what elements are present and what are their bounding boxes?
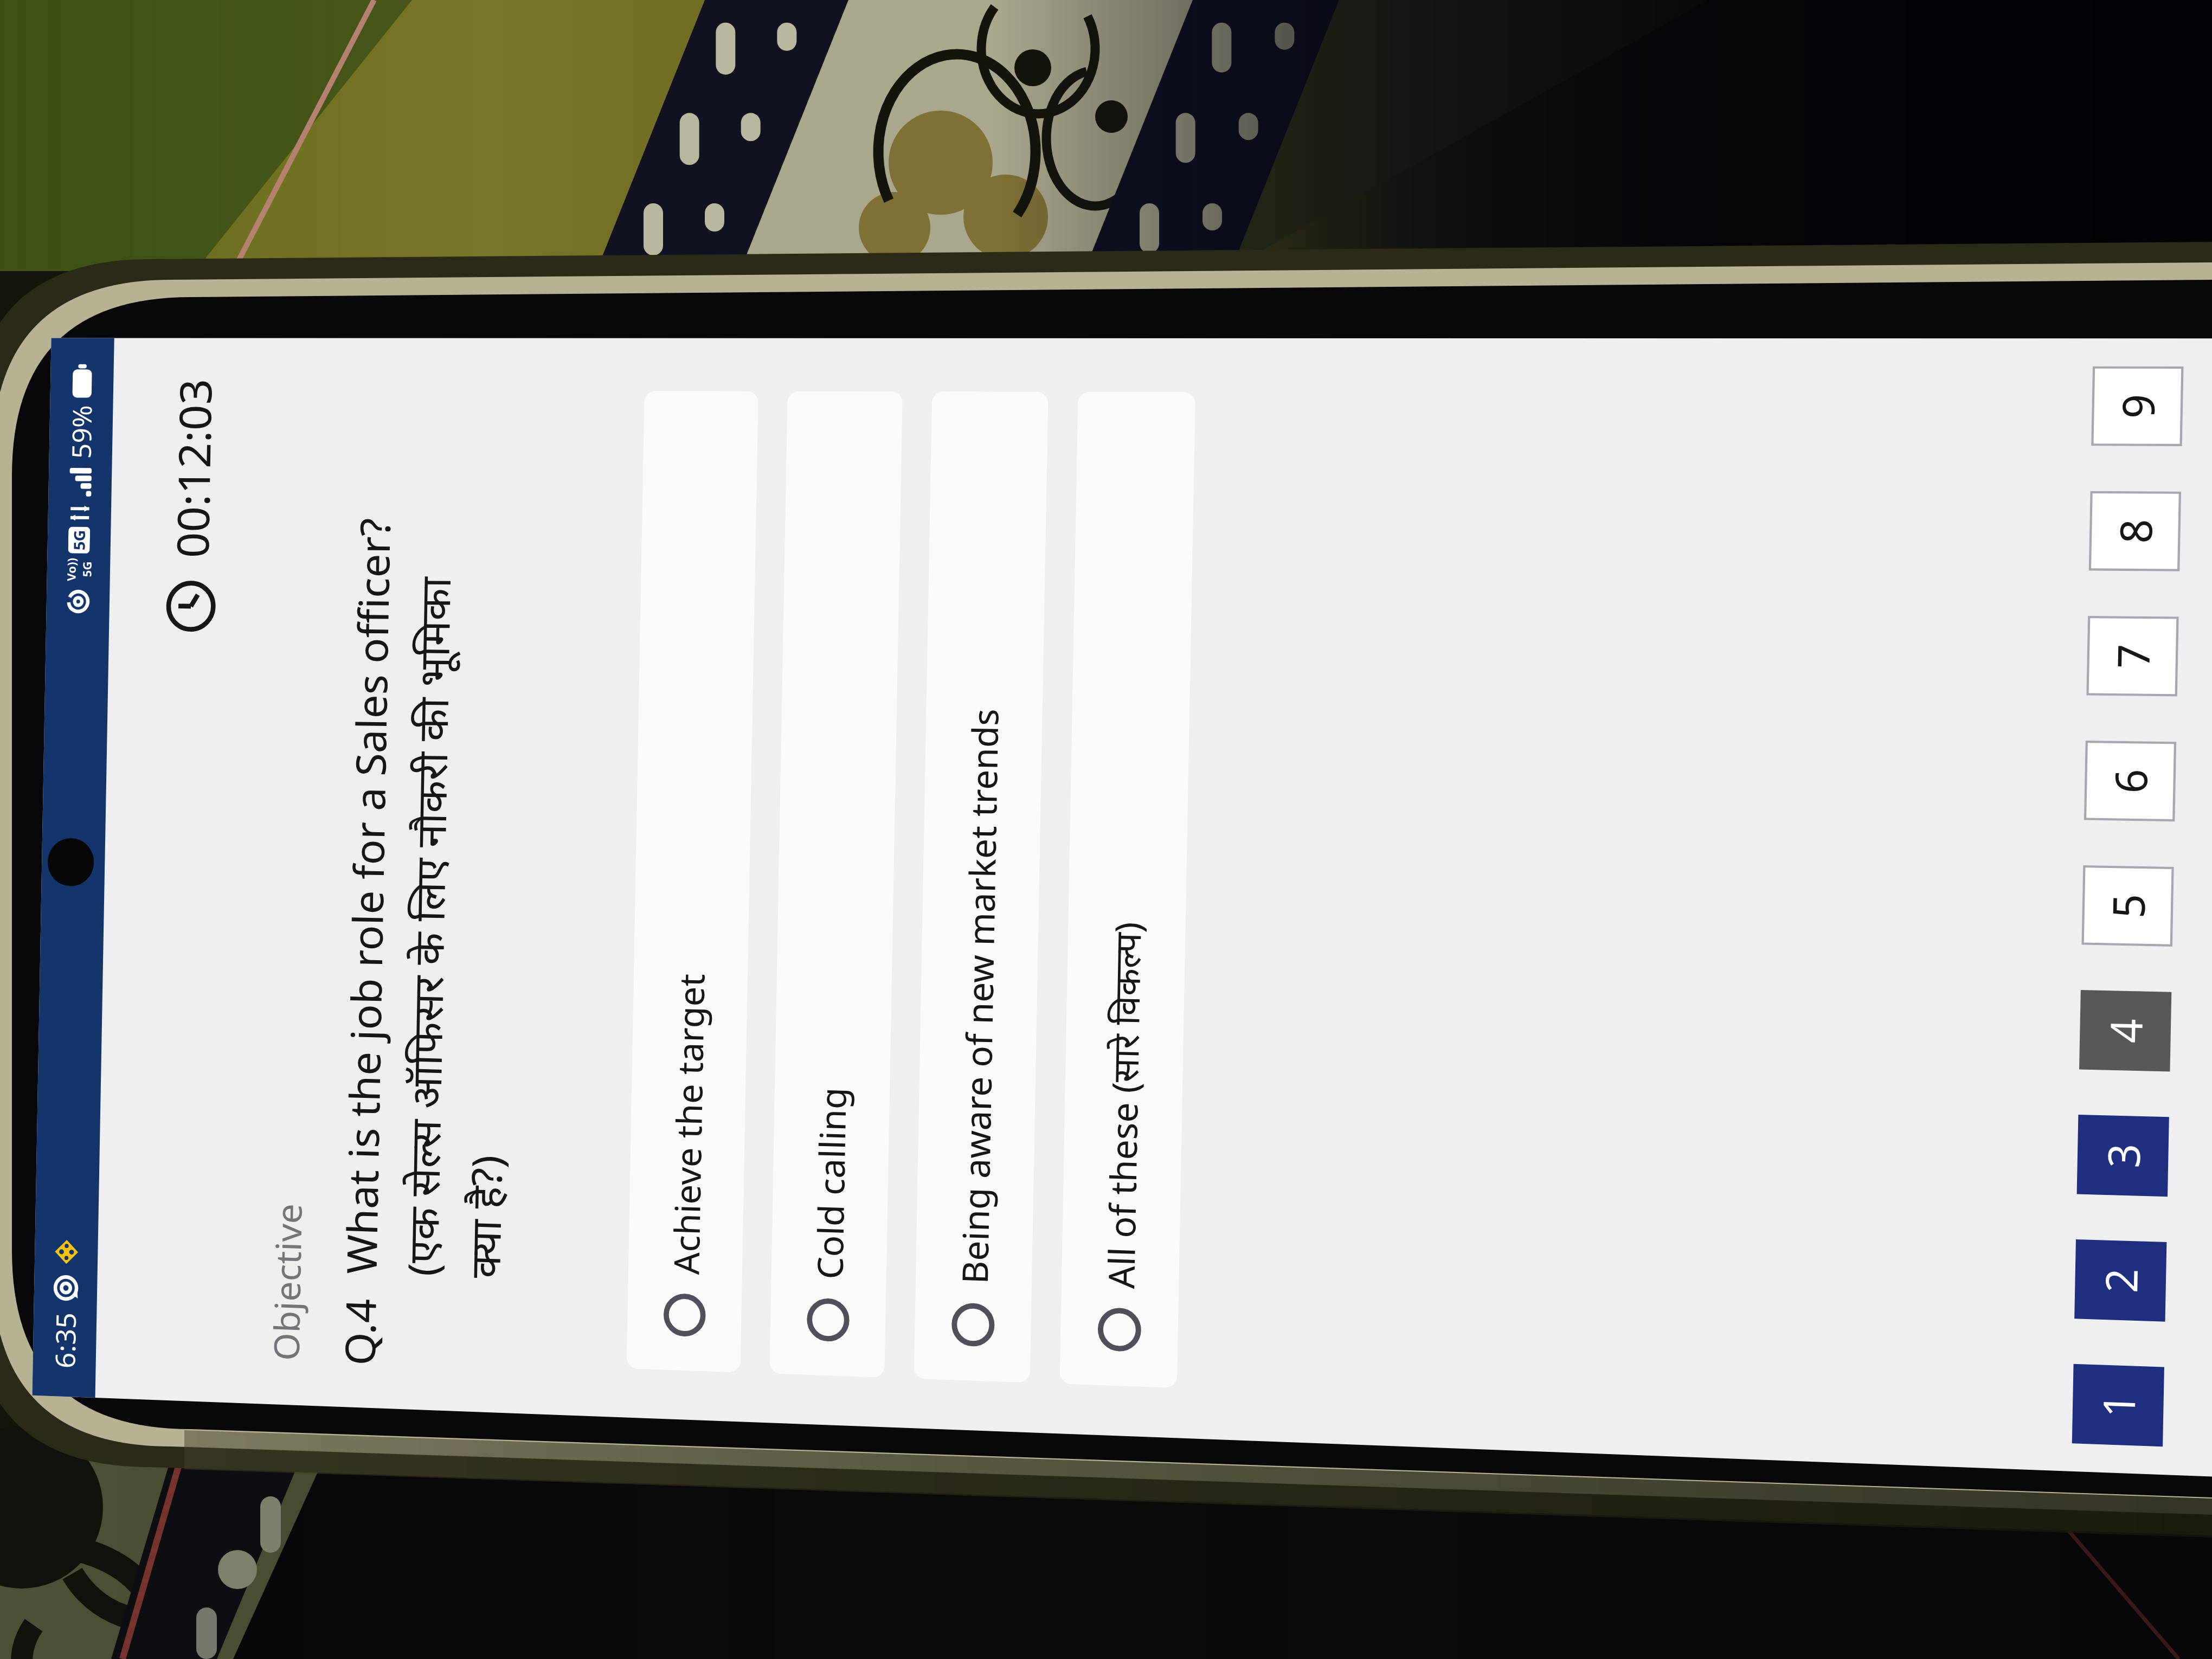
button[interactable]: 8 (2089, 491, 2181, 571)
button[interactable]: 5 (2082, 865, 2174, 947)
button[interactable]: 4 (2079, 990, 2172, 1072)
staticText: Q.4 (331, 1297, 388, 1366)
staticText: 8 (2105, 519, 2166, 544)
button[interactable]: 6 (2084, 741, 2176, 821)
staticText: Cold calling (805, 1087, 856, 1280)
staticText: 5G (79, 561, 95, 577)
staticText: 6 (2100, 768, 2161, 794)
staticText: 7 (2102, 643, 2163, 669)
staticText: 59% (63, 405, 99, 459)
staticText: What is the job role for a Sales officer… (332, 517, 526, 1279)
button[interactable]: 7 (2086, 616, 2179, 696)
button[interactable]: 9 (2091, 366, 2184, 446)
button[interactable]: Achieve the target (626, 391, 758, 1373)
button[interactable]: 3 (2077, 1115, 2169, 1197)
staticText: Vo)) (63, 557, 79, 581)
button[interactable]: 2 (2074, 1239, 2167, 1322)
staticText: 1 (2088, 1392, 2149, 1419)
staticText: 5G (69, 530, 90, 550)
staticText: 2 (2090, 1267, 2151, 1294)
staticText: 6:35 (46, 1311, 84, 1369)
staticText: All of these (सारे विकल्प) (1096, 921, 1151, 1289)
staticText: 3 (2093, 1142, 2154, 1169)
button[interactable]: 1 (2072, 1364, 2164, 1447)
staticText: 4 (2095, 1018, 2156, 1044)
staticText: 9 (2107, 394, 2168, 419)
staticText: Being aware of new market trends (950, 708, 1009, 1285)
staticText: Objective (262, 1203, 312, 1361)
staticText: 00:12:03 (162, 378, 225, 558)
button[interactable]: Cold calling (769, 391, 903, 1378)
staticText: 5 (2098, 893, 2158, 919)
button[interactable]: Being aware of new market trends (914, 391, 1048, 1383)
button[interactable]: All of these (सारे विकल्प) (1060, 392, 1196, 1388)
staticText: Achieve the target (662, 973, 715, 1275)
